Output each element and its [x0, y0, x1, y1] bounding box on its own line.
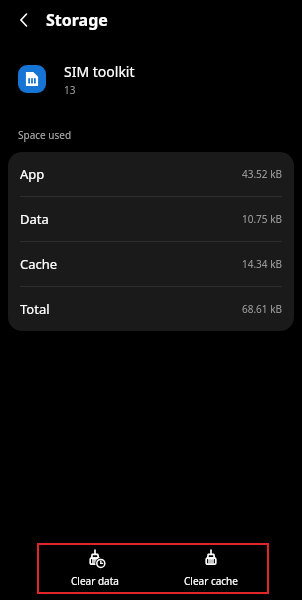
staticText: App — [20, 165, 45, 183]
button[interactable]: Cache — [8, 242, 294, 286]
button[interactable]: Total — [8, 287, 294, 331]
staticText: SIM toolkit — [64, 62, 135, 81]
staticText: 68.61 kB — [242, 302, 282, 316]
staticText: 43.52 kB — [242, 167, 282, 181]
staticText: Cache — [20, 255, 58, 273]
button[interactable]: Data — [8, 197, 294, 241]
staticText: 14.34 kB — [242, 257, 282, 271]
button[interactable]: Clear data — [37, 543, 153, 594]
button[interactable]: Back — [8, 4, 40, 36]
button[interactable]: Clear cache — [153, 543, 269, 594]
staticText: Space used — [18, 128, 72, 142]
button[interactable]: App — [8, 152, 294, 196]
staticText: Total — [20, 300, 50, 318]
staticText: Data — [20, 210, 49, 228]
staticText: Storage — [46, 9, 108, 31]
staticText: 13 — [64, 83, 76, 97]
staticText: Clear data — [71, 574, 119, 588]
button[interactable]: SIM toolkit — [0, 54, 302, 104]
staticText: Clear cache — [184, 574, 238, 588]
staticText: 10.75 kB — [242, 212, 282, 226]
